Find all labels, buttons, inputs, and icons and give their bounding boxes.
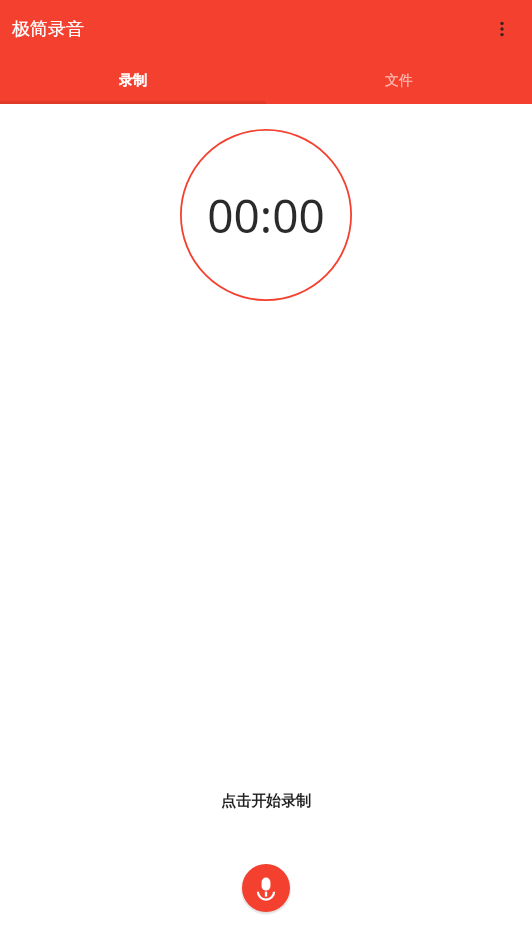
- button[interactable]: 文件: [266, 58, 532, 104]
- button[interactable]: Start recording: [242, 864, 290, 912]
- staticText: 00:00: [207, 184, 325, 247]
- staticText: 文件: [385, 72, 413, 90]
- staticText: 录制: [119, 72, 147, 90]
- staticText: 点击开始录制: [221, 792, 311, 811]
- button[interactable]: More options: [482, 9, 522, 49]
- button[interactable]: 录制: [0, 58, 266, 104]
- staticText: 极简录音: [12, 18, 84, 41]
